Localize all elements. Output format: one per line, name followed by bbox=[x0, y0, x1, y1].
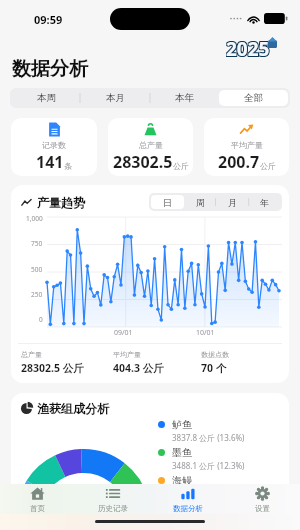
button[interactable]: 周 bbox=[184, 195, 216, 209]
staticText: 28302.5 公斤 bbox=[21, 361, 84, 375]
staticText: 2025 bbox=[226, 36, 270, 62]
staticText: 2025 bbox=[226, 37, 269, 62]
staticText: 200.7 bbox=[218, 151, 260, 173]
staticText: 141 bbox=[36, 151, 64, 173]
button[interactable]: 首页 bbox=[0, 484, 75, 514]
button[interactable]: 本周 bbox=[12, 90, 81, 106]
staticText: 周 bbox=[196, 197, 205, 208]
staticText: 总产量 bbox=[21, 350, 42, 359]
staticText: 数据分析 bbox=[173, 504, 203, 513]
staticText: 250 bbox=[31, 290, 43, 299]
staticText: 2025 bbox=[226, 37, 270, 62]
staticText: 本周 bbox=[37, 92, 56, 104]
staticText: 设置 bbox=[255, 504, 270, 513]
button[interactable]: 记录数 bbox=[11, 118, 97, 176]
button[interactable]: 设置 bbox=[225, 484, 300, 514]
button[interactable]: 平均产量 bbox=[204, 118, 289, 176]
button[interactable]: 全部 bbox=[219, 90, 288, 106]
staticText: 海鳗 bbox=[172, 474, 192, 487]
staticText: 2025 bbox=[226, 36, 269, 62]
button[interactable]: 墨鱼 bbox=[158, 446, 245, 471]
staticText: 28302.5 bbox=[113, 151, 173, 173]
staticText: 月 bbox=[228, 197, 237, 208]
staticText: 渔获组成分析 bbox=[37, 401, 109, 416]
staticText: 墨鱼 bbox=[172, 446, 192, 459]
staticText: 500 bbox=[31, 265, 43, 274]
button[interactable]: 历史记录 bbox=[75, 484, 150, 514]
staticText: 年 bbox=[260, 197, 269, 208]
button[interactable]: 数据分析 bbox=[150, 484, 225, 514]
staticText: 平均产量 bbox=[231, 140, 263, 150]
staticText: 0 bbox=[39, 315, 43, 324]
staticText: 3837.8 公斤 (13.6%) bbox=[172, 432, 245, 443]
staticText: 09:59 bbox=[34, 12, 63, 27]
staticText: 404.3 公斤 bbox=[113, 361, 164, 375]
staticText: 2025 bbox=[227, 36, 271, 61]
staticText: 鲈鱼 bbox=[172, 418, 192, 431]
staticText: 首页 bbox=[30, 504, 45, 513]
staticText: 公斤 bbox=[173, 161, 189, 171]
staticText: 2025 bbox=[226, 36, 270, 61]
staticText: 公斤 bbox=[260, 161, 276, 171]
staticText: 70 个 bbox=[201, 361, 227, 375]
button[interactable]: 2025 bbox=[226, 36, 279, 62]
button[interactable]: 鲈鱼 bbox=[158, 418, 245, 443]
button[interactable]: 月 bbox=[216, 195, 248, 209]
staticText: 3488.1 公斤 (12.3%) bbox=[172, 460, 245, 471]
staticText: 总产量 bbox=[139, 140, 163, 150]
staticText: 本年 bbox=[175, 92, 194, 104]
staticText: 本月 bbox=[106, 92, 125, 104]
staticText: 10/01 bbox=[196, 328, 215, 337]
staticText: 数据分析 bbox=[12, 57, 88, 81]
staticText: 09/01 bbox=[114, 328, 133, 337]
button[interactable]: 本月 bbox=[81, 90, 150, 106]
staticText: 记录数 bbox=[42, 140, 66, 150]
staticText: 条 bbox=[64, 161, 72, 171]
staticText: 数据点数 bbox=[201, 350, 229, 359]
button[interactable]: 日 bbox=[151, 195, 184, 209]
staticText: 全部 bbox=[244, 92, 263, 104]
staticText: 2025 bbox=[227, 37, 271, 62]
staticText: 1,000 bbox=[26, 214, 43, 223]
staticText: 产量趋势 bbox=[37, 195, 85, 210]
staticText: 2025 bbox=[227, 36, 271, 62]
staticText: 历史记录 bbox=[98, 504, 128, 513]
staticText: 平均产量 bbox=[113, 350, 141, 359]
button[interactable]: 年 bbox=[248, 195, 280, 209]
staticText: 2025 bbox=[226, 36, 269, 61]
button[interactable]: 总产量 bbox=[108, 118, 193, 176]
staticText: 日 bbox=[163, 197, 172, 208]
staticText: 750 bbox=[31, 239, 43, 248]
button[interactable]: 本年 bbox=[150, 90, 219, 106]
button[interactable]: 海鳗 bbox=[158, 474, 192, 487]
